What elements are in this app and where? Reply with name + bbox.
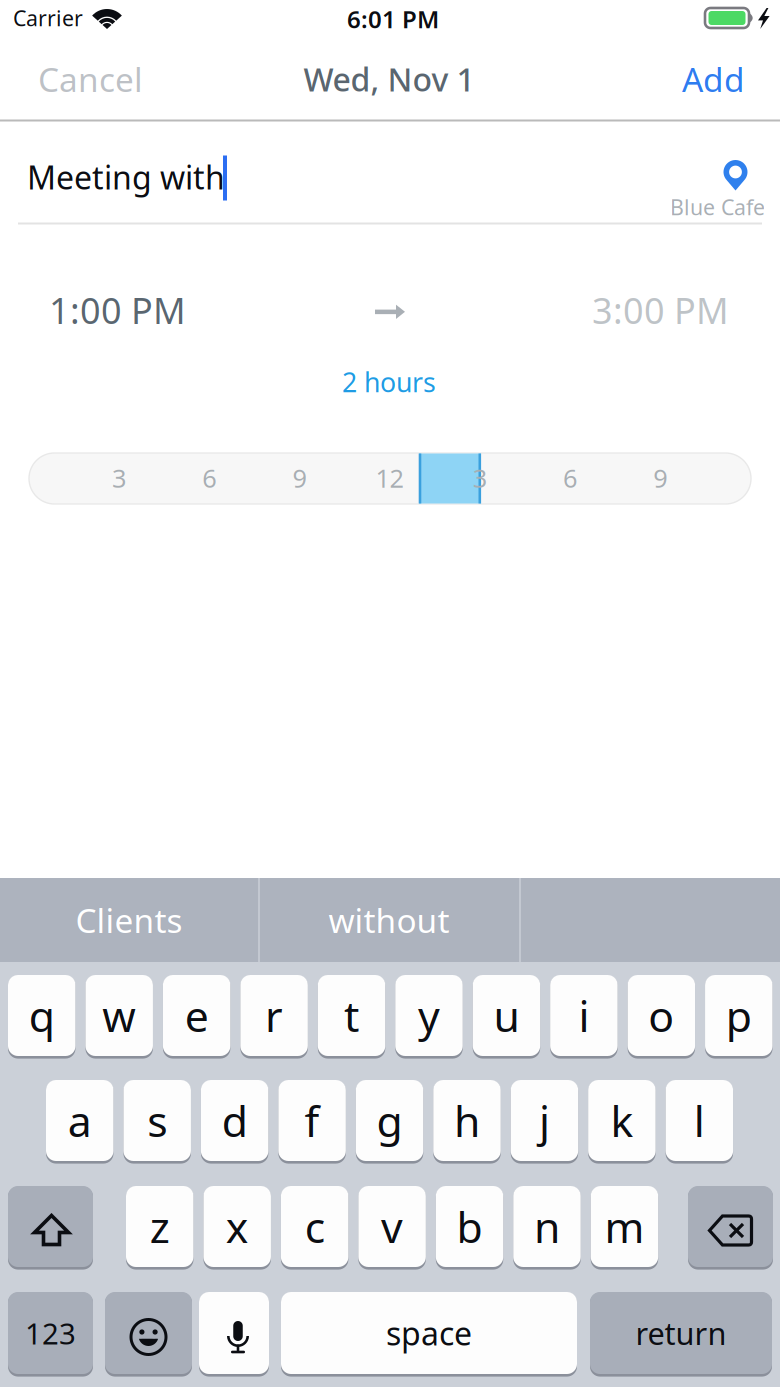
button[interactable]: i	[550, 973, 618, 1058]
staticText: 9	[292, 461, 306, 495]
staticText: space	[386, 1312, 472, 1354]
button[interactable]: f	[278, 1078, 346, 1163]
button[interactable]: 3:00 PM	[509, 280, 729, 340]
staticText: r	[265, 987, 283, 1044]
button[interactable]: l	[666, 1078, 733, 1163]
staticText: Wed, Nov 1	[303, 58, 474, 100]
button[interactable]: x	[203, 1184, 271, 1269]
staticText: 6	[202, 461, 216, 495]
staticText: z	[150, 1198, 170, 1255]
staticText: u	[493, 987, 519, 1044]
button[interactable]: q	[8, 973, 75, 1058]
staticText: 6	[563, 461, 577, 495]
button[interactable]: z	[126, 1184, 193, 1269]
button[interactable]: Shift	[8, 1184, 93, 1269]
staticText: 1:00 PM	[49, 286, 186, 334]
button[interactable]: Add	[605, 43, 745, 115]
staticText: i	[578, 987, 589, 1044]
button[interactable]: g	[356, 1078, 423, 1163]
button[interactable]: r	[240, 973, 308, 1058]
button[interactable]: a	[46, 1078, 113, 1163]
staticText: Add	[682, 57, 745, 101]
button[interactable]: o	[628, 973, 695, 1058]
button[interactable]: Cancel	[38, 43, 218, 115]
button[interactable]: without	[259, 878, 519, 962]
staticText: f	[305, 1092, 320, 1149]
button[interactable]: d	[201, 1078, 268, 1163]
button[interactable]: y	[395, 973, 463, 1058]
staticText: 123	[25, 1313, 76, 1352]
staticText: t	[344, 987, 359, 1044]
staticText: 9	[653, 461, 667, 495]
staticText: k	[610, 1092, 633, 1149]
staticText: 3	[473, 461, 487, 495]
staticText: o	[648, 987, 674, 1044]
staticText: a	[68, 1092, 92, 1149]
staticText: Meeting with	[27, 156, 225, 198]
staticText: m	[604, 1198, 644, 1255]
staticText: g	[377, 1092, 403, 1149]
staticText: 6:01 PM	[347, 3, 439, 35]
button[interactable]: n	[513, 1184, 581, 1269]
staticText: Carrier	[13, 4, 83, 32]
staticText: Blue Cafe	[670, 193, 765, 221]
button[interactable]: 1:00 PM	[49, 280, 269, 340]
staticText: Cancel	[38, 57, 143, 101]
staticText: q	[29, 987, 55, 1044]
staticText: s	[147, 1092, 167, 1149]
button[interactable]: 123	[8, 1290, 93, 1376]
staticText: 3:00 PM	[592, 286, 729, 334]
button[interactable]: Emoji	[105, 1290, 192, 1376]
staticText: y	[418, 987, 440, 1044]
button[interactable]: m	[591, 1184, 658, 1269]
staticText: w	[102, 987, 136, 1044]
staticText: without	[328, 898, 449, 942]
button[interactable]: c	[281, 1184, 348, 1269]
button[interactable]: Delete	[688, 1184, 773, 1269]
staticText: j	[539, 1092, 550, 1149]
staticText: l	[694, 1092, 705, 1149]
staticText: n	[534, 1198, 560, 1255]
staticText: 12	[376, 461, 404, 495]
button[interactable]: p	[705, 973, 773, 1058]
button[interactable]: s	[123, 1078, 191, 1163]
staticText: b	[457, 1198, 483, 1255]
button[interactable]: h	[433, 1078, 501, 1163]
button[interactable]: w	[85, 973, 153, 1058]
staticText: v	[381, 1198, 403, 1255]
button[interactable]: v	[358, 1184, 426, 1269]
staticText: c	[305, 1198, 325, 1255]
staticText: h	[454, 1092, 480, 1149]
button[interactable]: b	[436, 1184, 503, 1269]
staticText: 3	[112, 461, 126, 495]
button[interactable]: Dictation	[199, 1290, 269, 1376]
button[interactable]: space	[281, 1290, 577, 1376]
button[interactable]: e	[163, 973, 230, 1058]
button[interactable]: Clients	[0, 878, 258, 962]
button[interactable]: Blue Cafe	[670, 155, 765, 220]
button[interactable]: k	[588, 1078, 656, 1163]
button[interactable]: return	[590, 1290, 772, 1376]
staticText: 2 hours	[342, 364, 436, 400]
button[interactable]: t	[318, 973, 385, 1058]
staticText: return	[635, 1313, 726, 1353]
staticText: p	[726, 987, 752, 1044]
staticText: e	[185, 987, 209, 1044]
staticText: Clients	[75, 898, 182, 942]
staticText: d	[222, 1092, 248, 1149]
staticText: x	[226, 1198, 249, 1255]
button[interactable]: j	[511, 1078, 578, 1163]
button[interactable]: u	[473, 973, 540, 1058]
